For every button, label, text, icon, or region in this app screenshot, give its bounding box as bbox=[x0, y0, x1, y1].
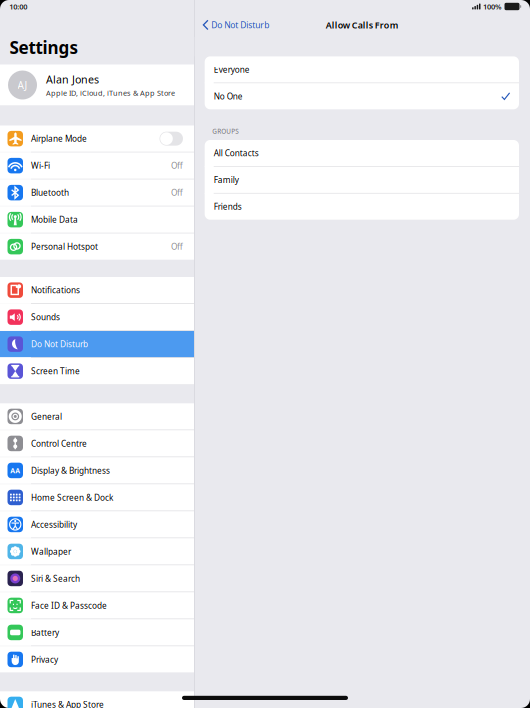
button[interactable]: Accessibility bbox=[0, 511, 194, 538]
staticText: All Contacts bbox=[214, 147, 259, 159]
staticText: Apple ID, iCloud, iTunes & App Store bbox=[46, 88, 175, 98]
staticText: Battery bbox=[31, 627, 59, 638]
button[interactable]: AJ bbox=[0, 64, 194, 105]
button[interactable]: Control Centre bbox=[0, 430, 194, 457]
staticText: Privacy bbox=[31, 654, 58, 665]
staticText: Display & Brightness bbox=[31, 465, 110, 476]
button[interactable]: Everyone bbox=[205, 56, 519, 82]
staticText: Bluetooth bbox=[31, 187, 69, 198]
button[interactable]: General bbox=[0, 403, 194, 430]
staticText: AJ bbox=[17, 78, 27, 92]
staticText: Friends bbox=[214, 201, 242, 212]
button[interactable]: iTunes & App Store bbox=[0, 691, 194, 708]
staticText: Do Not Disturb bbox=[31, 338, 88, 350]
button[interactable]: Battery bbox=[0, 619, 194, 646]
button[interactable]: All Contacts bbox=[205, 140, 519, 166]
staticText: Off bbox=[171, 241, 183, 252]
staticText: iTunes & App Store bbox=[31, 699, 104, 708]
staticText: General bbox=[31, 411, 62, 422]
button[interactable]: Home Screen & Dock bbox=[0, 484, 194, 511]
staticText: Everyone bbox=[214, 64, 250, 75]
staticText: Wi-Fi bbox=[31, 160, 50, 171]
button[interactable]: Notifications bbox=[0, 277, 194, 303]
staticText: No One bbox=[214, 91, 243, 102]
staticText: 10:00 bbox=[9, 1, 27, 12]
staticText: Accessibility bbox=[31, 519, 77, 530]
button[interactable]: Wallpaper bbox=[0, 538, 194, 565]
staticText: Off bbox=[171, 160, 183, 171]
button[interactable]: Do Not Disturb bbox=[195, 14, 269, 36]
staticText: Alan Jones bbox=[46, 72, 99, 86]
button[interactable]: Privacy bbox=[0, 646, 194, 673]
button[interactable]: Screen Time bbox=[0, 358, 194, 384]
button[interactable]: Airplane Mode bbox=[0, 125, 194, 152]
button[interactable]: Friends bbox=[205, 194, 519, 220]
button[interactable]: Bluetooth bbox=[0, 179, 194, 206]
button[interactable]: Do Not Disturb bbox=[0, 331, 194, 357]
staticText: Siri & Search bbox=[31, 573, 80, 584]
button[interactable]: Sounds bbox=[0, 304, 194, 330]
button[interactable]: Family bbox=[205, 167, 519, 193]
button[interactable]: AA bbox=[0, 457, 194, 484]
staticText: AA bbox=[10, 466, 20, 475]
staticText: Screen Time bbox=[31, 365, 80, 377]
button[interactable]: Personal Hotspot bbox=[0, 233, 194, 260]
staticText: Do Not Disturb bbox=[211, 19, 269, 31]
button[interactable]: Face ID & Passcode bbox=[0, 592, 194, 619]
staticText: Wallpaper bbox=[31, 546, 71, 557]
staticText: Control Centre bbox=[31, 438, 87, 449]
button[interactable]: Wi-Fi bbox=[0, 152, 194, 179]
staticText: Personal Hotspot bbox=[31, 241, 98, 252]
staticText: 100% bbox=[483, 1, 502, 12]
staticText: Notifications bbox=[31, 284, 80, 296]
staticText: Mobile Data bbox=[31, 214, 78, 225]
staticText: Home Screen & Dock bbox=[31, 492, 113, 503]
staticText: Settings bbox=[9, 36, 78, 59]
staticText: Allow Calls From bbox=[326, 19, 399, 31]
button[interactable]: Siri & Search bbox=[0, 565, 194, 592]
button[interactable]: Mobile Data bbox=[0, 206, 194, 233]
staticText: Off bbox=[171, 187, 183, 198]
button[interactable]: No One bbox=[205, 83, 519, 109]
staticText: Family bbox=[214, 174, 239, 185]
staticText: Airplane Mode bbox=[31, 133, 87, 144]
staticText: GROUPS bbox=[212, 127, 239, 136]
staticText: Face ID & Passcode bbox=[31, 600, 107, 611]
staticText: Sounds bbox=[31, 311, 60, 323]
